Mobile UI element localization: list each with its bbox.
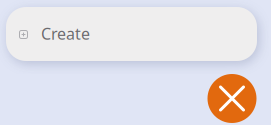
button[interactable]: Close — [207, 74, 256, 123]
button[interactable]: Create — [6, 7, 257, 61]
staticText: Create — [41, 23, 90, 44]
